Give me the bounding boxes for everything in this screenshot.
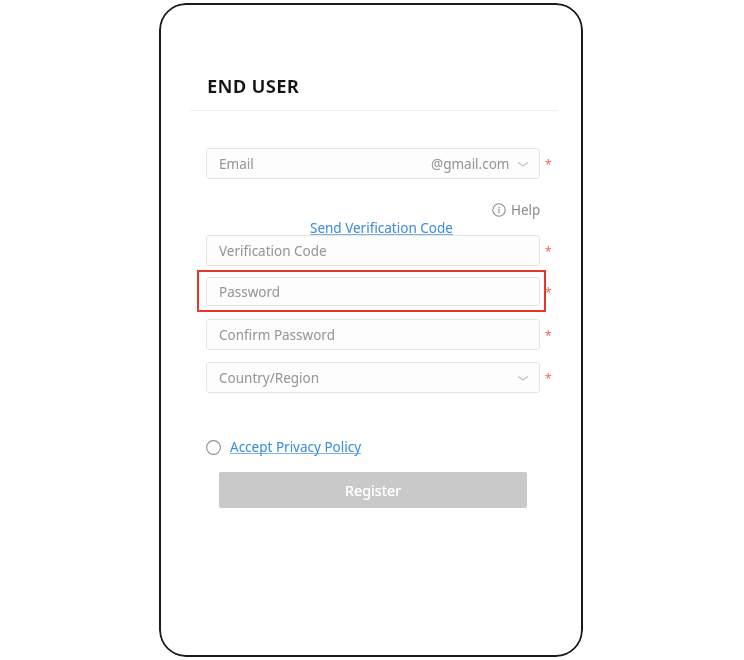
staticText: Country/Region [219,369,320,387]
staticText: Confirm Password [219,326,335,344]
button[interactable]: Register [219,472,527,508]
staticText: @gmail.com [431,155,510,173]
staticText: Password [219,283,281,301]
button[interactable]: Country/Region [206,362,540,393]
button[interactable]: Accept Privacy Policy [204,434,366,460]
staticText: * [545,156,552,172]
staticText: * [545,327,552,343]
staticText: Register [345,480,402,500]
button[interactable]: Confirm Password [206,319,540,350]
button[interactable]: Help [490,199,543,221]
staticText: Accept Privacy Policy [230,438,362,456]
button[interactable]: Verification Code [206,235,540,266]
staticText: Send Verification Code [310,219,453,237]
staticText: Verification Code [219,242,327,260]
staticText: * [545,370,552,386]
button[interactable]: Password [206,277,540,306]
staticText: * [545,243,552,259]
staticText: Help [511,201,541,219]
button[interactable]: Send Verification Code [306,218,457,238]
staticText: END USER [207,73,300,98]
staticText: * [545,284,552,300]
staticText: Email [219,155,254,173]
button[interactable]: Email [206,148,540,179]
